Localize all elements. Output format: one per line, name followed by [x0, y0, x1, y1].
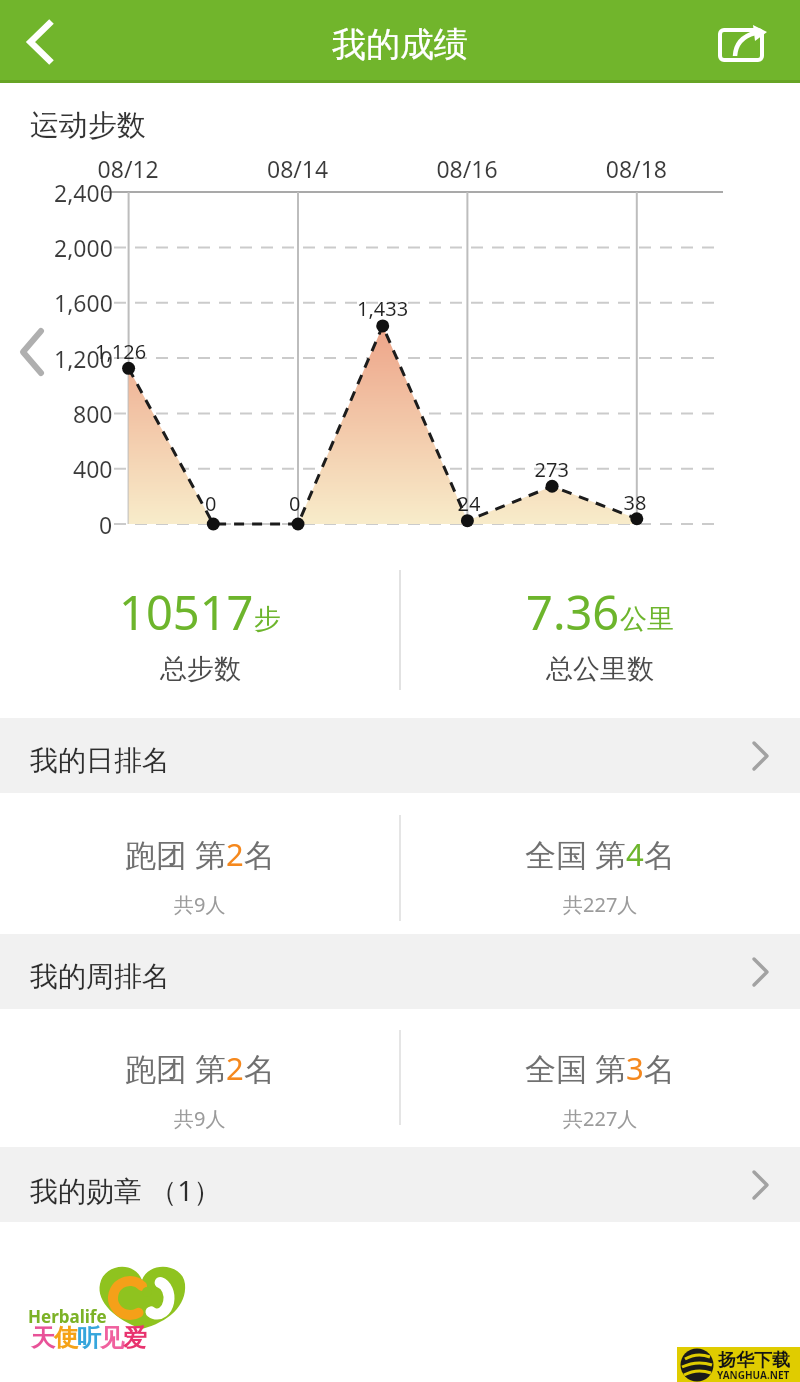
- staticText: Herbalife: [28, 1305, 107, 1328]
- staticText: 我的成绩: [332, 23, 468, 66]
- button[interactable]: 我的日排名: [0, 718, 800, 793]
- staticText: 听: [77, 1323, 101, 1353]
- staticText: 公里: [620, 602, 674, 636]
- staticText: 共9人: [174, 1105, 226, 1132]
- button[interactable]: 跑团 第2名: [0, 1008, 400, 1147]
- staticText: 7.36: [526, 580, 620, 644]
- staticText: 共227人: [563, 891, 638, 918]
- staticText: 我的周排名: [30, 959, 170, 994]
- staticText: YANGHUA.NET: [717, 1368, 790, 1382]
- staticText: 总步数: [160, 652, 241, 686]
- staticText: 共227人: [563, 1105, 638, 1132]
- button[interactable]: [0, 0, 80, 83]
- button[interactable]: 我的周排名: [0, 934, 800, 1009]
- staticText: 爱: [123, 1323, 147, 1353]
- staticText: 总公里数: [546, 652, 654, 686]
- button[interactable]: 我的勋章 （1）: [0, 1147, 800, 1222]
- staticText: 天: [31, 1323, 55, 1353]
- staticText: 见: [100, 1323, 124, 1353]
- staticText: 我的日排名: [30, 743, 170, 778]
- staticText: 扬华下载: [718, 1349, 790, 1372]
- button[interactable]: 全国 第3名: [400, 1008, 800, 1147]
- staticText: 共9人: [174, 891, 226, 918]
- staticText: 运动步数: [30, 107, 146, 144]
- staticText: 跑团 第2名: [125, 833, 275, 875]
- button[interactable]: 跑团 第2名: [0, 794, 400, 934]
- staticText: 我的勋章 （1）: [30, 1171, 222, 1209]
- staticText: 步: [254, 602, 281, 636]
- button[interactable]: 全国 第4名: [400, 794, 800, 934]
- staticText: 10517: [119, 580, 254, 644]
- staticText: 使: [54, 1323, 78, 1353]
- button[interactable]: [690, 0, 800, 83]
- staticText: 全国 第4名: [525, 833, 675, 875]
- staticText: 全国 第3名: [525, 1047, 675, 1089]
- staticText: 跑团 第2名: [125, 1047, 275, 1089]
